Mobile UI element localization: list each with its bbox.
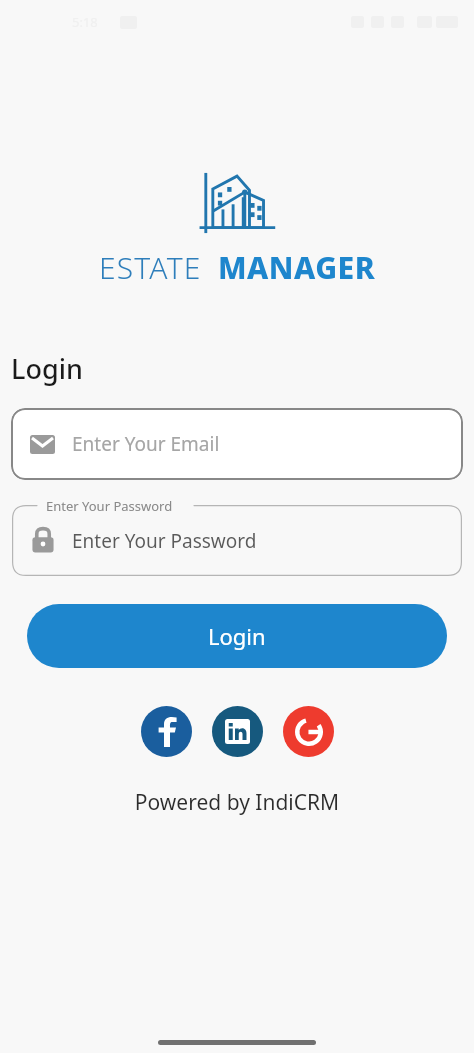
button[interactable]: Sign in with Google — [283, 706, 334, 757]
button[interactable]: Sign in with LinkedIn — [212, 706, 263, 757]
button[interactable]: Enter Your Email — [11, 408, 463, 480]
button[interactable]: Sign in with Facebook — [141, 706, 192, 757]
staticText: Enter Your Email — [72, 431, 220, 457]
staticText: Login — [208, 621, 266, 651]
staticText: Enter Your Password — [46, 497, 173, 515]
staticText: ESTATE — [99, 247, 202, 288]
button[interactable]: Enter Your Password — [12, 505, 462, 576]
staticText: Powered by IndiCRM — [0, 788, 474, 817]
button[interactable]: Login — [27, 604, 447, 668]
staticText: MANAGER — [218, 247, 376, 288]
staticText: Login — [11, 350, 83, 387]
staticText: Enter Your Password — [72, 528, 257, 554]
